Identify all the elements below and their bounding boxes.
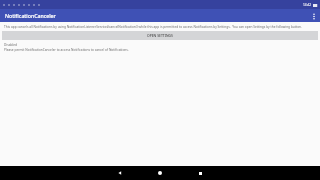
staticText: NotificationCanceler [5, 12, 56, 19]
staticText: This app cancels all Notifications by us… [4, 25, 316, 29]
button[interactable]: More options [308, 10, 320, 22]
staticText: Please permit NotificationCanceler to ac… [4, 48, 129, 52]
staticText: 14:42 [303, 3, 312, 7]
button[interactable]: Home [155, 168, 165, 178]
staticText: OPEN SETTINGS [147, 33, 173, 38]
staticText: Disabled [4, 43, 18, 47]
button[interactable]: Back [115, 168, 125, 178]
button[interactable]: Recent apps [195, 168, 205, 178]
button[interactable]: OPEN SETTINGS [2, 31, 318, 40]
